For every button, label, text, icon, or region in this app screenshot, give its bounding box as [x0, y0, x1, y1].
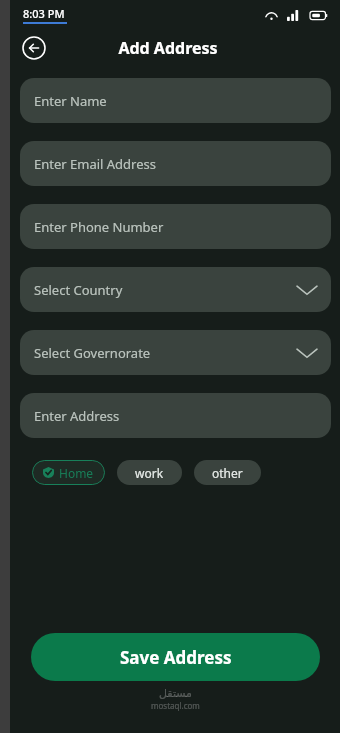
staticText: Select Governorate [34, 344, 151, 362]
staticText: 8:03 PM [23, 6, 65, 21]
staticText: Add Address [118, 37, 218, 59]
button[interactable]: Home [32, 460, 105, 485]
button[interactable]: Select Country [20, 267, 331, 312]
staticText: Select Country [34, 281, 123, 299]
button[interactable]: Enter Name [20, 78, 331, 123]
staticText: مستقل [159, 687, 192, 700]
staticText: Enter Phone Number [34, 218, 164, 236]
button[interactable]: work [117, 460, 182, 485]
button[interactable]: Enter Address [20, 393, 331, 438]
button[interactable]: Enter Phone Number [20, 204, 331, 249]
staticText: Save Address [120, 646, 232, 669]
staticText: work [135, 465, 164, 481]
staticText: Enter Address [34, 407, 120, 425]
staticText: Enter Email Address [34, 155, 156, 173]
staticText: Home [59, 465, 94, 481]
button[interactable]: other [194, 460, 261, 485]
button[interactable]: Back [21, 35, 47, 61]
staticText: mostaql.com [151, 700, 200, 711]
button[interactable]: Select Governorate [20, 330, 331, 375]
button[interactable]: Enter Email Address [20, 141, 331, 186]
staticText: other [212, 465, 243, 481]
staticText: Enter Name [34, 92, 107, 110]
button[interactable]: Save Address [31, 633, 320, 681]
